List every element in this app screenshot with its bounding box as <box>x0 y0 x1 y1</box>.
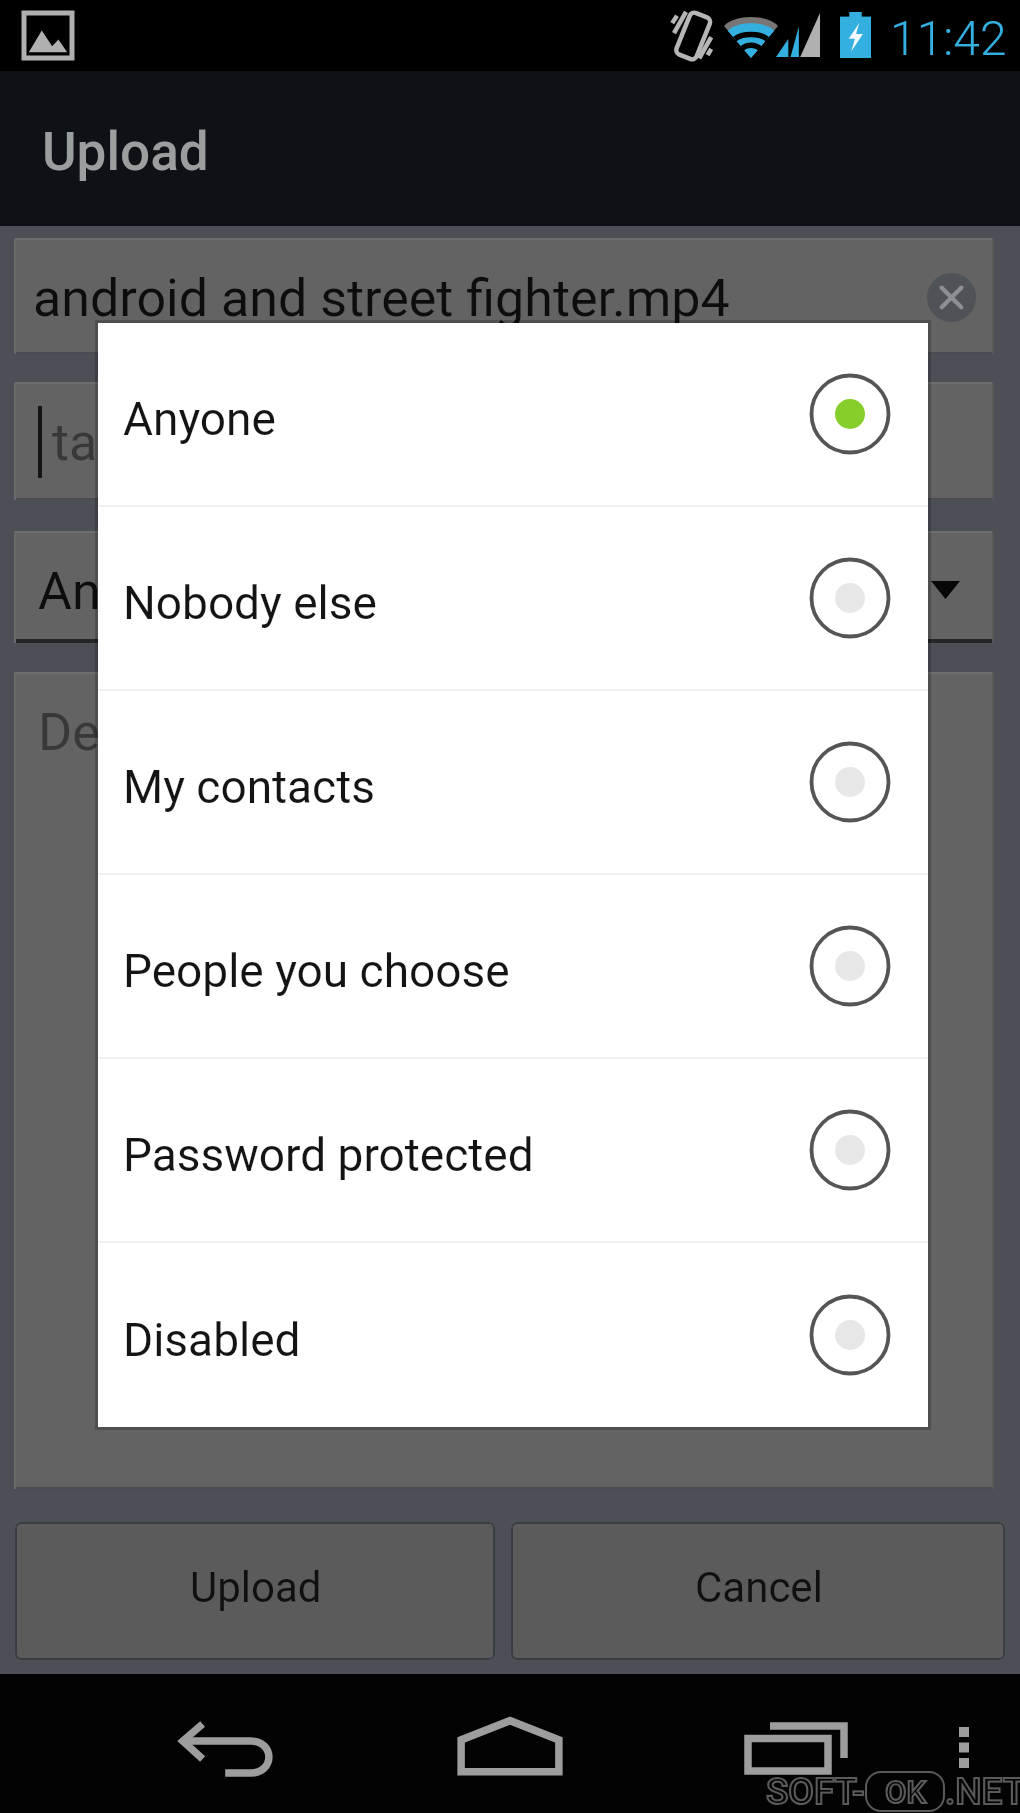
button[interactable]: Disabled <box>98 1243 928 1427</box>
button[interactable]: Recent apps <box>746 1723 846 1773</box>
staticText: .NET <box>945 1770 1020 1813</box>
staticText: My contacts <box>123 760 871 814</box>
staticText: Upload <box>190 1563 322 1612</box>
staticText: Cancel <box>695 1563 823 1612</box>
button[interactable]: Upload <box>15 1522 495 1660</box>
staticText: Anyone <box>38 561 211 622</box>
staticText: People you choose <box>123 944 871 998</box>
staticText: Description <box>38 702 302 763</box>
button[interactable]: Back <box>181 1724 275 1774</box>
button[interactable]: More options <box>944 1718 984 1778</box>
button[interactable]: Anyone <box>98 323 928 505</box>
staticText: SOFT- <box>766 1770 865 1813</box>
button[interactable]: People you choose <box>98 875 928 1057</box>
staticText: Upload <box>42 121 209 183</box>
staticText: 11:42 <box>890 10 1007 66</box>
button[interactable]: Nobody else <box>98 507 928 689</box>
button[interactable]: My contacts <box>98 691 928 873</box>
staticText: Nobody else <box>123 576 871 630</box>
staticText: Disabled <box>123 1313 871 1367</box>
staticText: Password protected <box>123 1128 871 1182</box>
button[interactable]: Cancel <box>511 1522 1005 1660</box>
button[interactable]: Home <box>458 1719 562 1774</box>
staticText: Anyone <box>123 392 871 446</box>
staticText: tags <box>52 412 154 473</box>
button[interactable]: Password protected <box>98 1059 928 1241</box>
staticText: OK <box>885 1774 926 1810</box>
button[interactable]: Clear file name <box>927 273 976 322</box>
staticText: android and street fighter.mp4 <box>33 268 730 329</box>
